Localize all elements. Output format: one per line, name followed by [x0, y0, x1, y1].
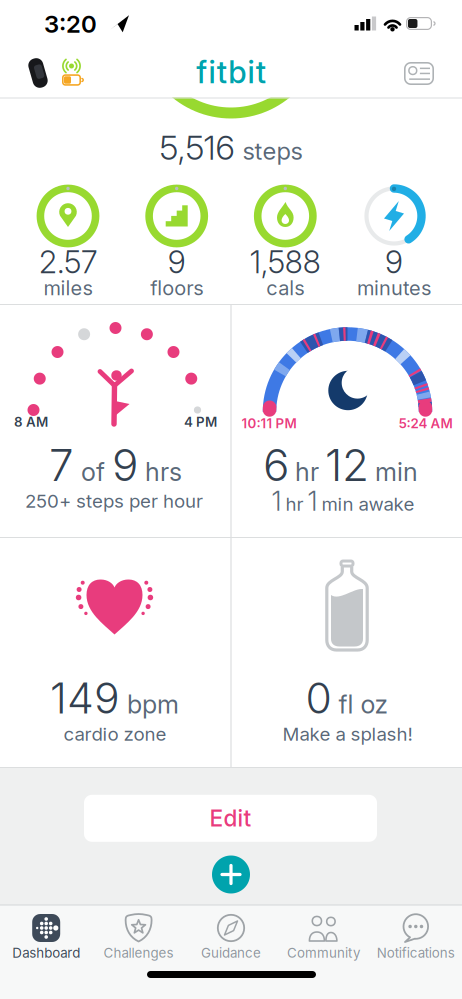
button[interactable]: 149 [0, 538, 230, 768]
button[interactable]: minutes [362, 184, 425, 247]
staticText: 250+ steps per hour [25, 490, 203, 512]
button[interactable]: Dashboard [4, 905, 88, 963]
staticText: Make a splash! [282, 723, 412, 745]
button[interactable]: 5,516 [159, 128, 302, 167]
staticText: floors [150, 276, 203, 300]
staticText: min awake [321, 493, 414, 515]
staticText: 3:20 [44, 10, 97, 38]
button[interactable]: 10:11 PM [231, 305, 462, 537]
staticText: 9 [385, 244, 403, 280]
staticText: cardio zone [63, 723, 166, 745]
button[interactable]: miles [36, 184, 99, 247]
staticText: Community [287, 945, 360, 961]
staticText: miles [43, 276, 92, 300]
staticText: 2.57 [39, 244, 97, 280]
staticText: 149 [50, 673, 120, 723]
staticText: Edit [209, 805, 251, 832]
staticText: 12 [325, 439, 369, 491]
staticText: 1,588 [250, 244, 321, 280]
staticText: 6 [263, 439, 289, 491]
button[interactable]: Add [212, 855, 250, 893]
staticText: hr [295, 457, 319, 487]
staticText: fl oz [338, 689, 387, 719]
staticText: steps [242, 137, 302, 165]
staticText: Guidance [201, 945, 261, 961]
button[interactable]: cals [254, 184, 317, 247]
staticText: Dashboard [12, 945, 80, 961]
button[interactable]: Account [404, 62, 434, 85]
staticText: Challenges [104, 945, 174, 961]
staticText: 10:11 PM [241, 416, 296, 431]
staticText: 5,516 [159, 128, 234, 167]
staticText: 8 AM [14, 414, 48, 430]
button[interactable]: Challenges [97, 905, 181, 963]
staticText: 5:24 AM [398, 416, 452, 431]
staticText: fitbit [196, 54, 266, 90]
button[interactable]: Community [281, 905, 365, 963]
button[interactable]: Edit [84, 795, 377, 842]
staticText: bpm [127, 689, 179, 719]
staticText: min [375, 457, 418, 487]
button[interactable]: Tracker [25, 57, 51, 89]
staticText: 7 [49, 439, 74, 491]
staticText: of [81, 457, 105, 487]
button[interactable]: Guidance [189, 905, 273, 963]
staticText: 1 [307, 485, 317, 517]
staticText: 9 [112, 439, 138, 491]
staticText: 4 PM [184, 414, 217, 430]
button[interactable]: 8 AM [0, 305, 230, 537]
button[interactable]: 0 [231, 538, 462, 768]
staticText: cals [266, 276, 304, 300]
staticText: minutes [357, 276, 431, 300]
staticText: 1 [271, 485, 281, 517]
staticText: hr [285, 493, 303, 515]
button[interactable]: Notifications [374, 905, 458, 963]
staticText: Notifications [377, 945, 455, 961]
staticText: 9 [168, 244, 186, 280]
button[interactable]: floors [145, 184, 208, 247]
staticText: 0 [305, 673, 331, 723]
staticText: hrs [145, 457, 182, 487]
